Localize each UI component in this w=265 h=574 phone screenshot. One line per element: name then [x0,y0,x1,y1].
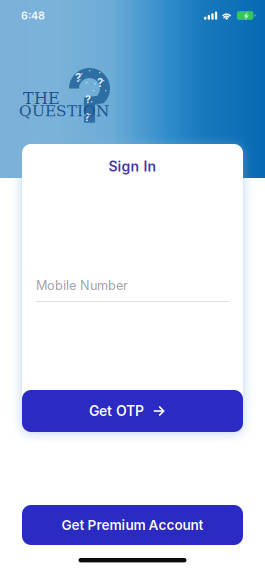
staticText: ? [97,76,103,90]
button[interactable]: Get Premium Account [22,505,243,545]
staticText: ? [84,111,90,124]
staticText: ? [85,93,91,106]
staticText: Sign In [108,158,156,175]
staticText: Mobile Number [36,278,128,293]
staticText: Get OTP [89,402,144,419]
staticText: QUESTION [19,102,109,120]
button[interactable]: Get OTP [22,390,243,432]
staticText: ? [75,71,81,85]
staticText: 6:48 [21,9,45,22]
staticText: Get Premium Account [61,517,203,533]
staticText: THE [23,89,60,108]
